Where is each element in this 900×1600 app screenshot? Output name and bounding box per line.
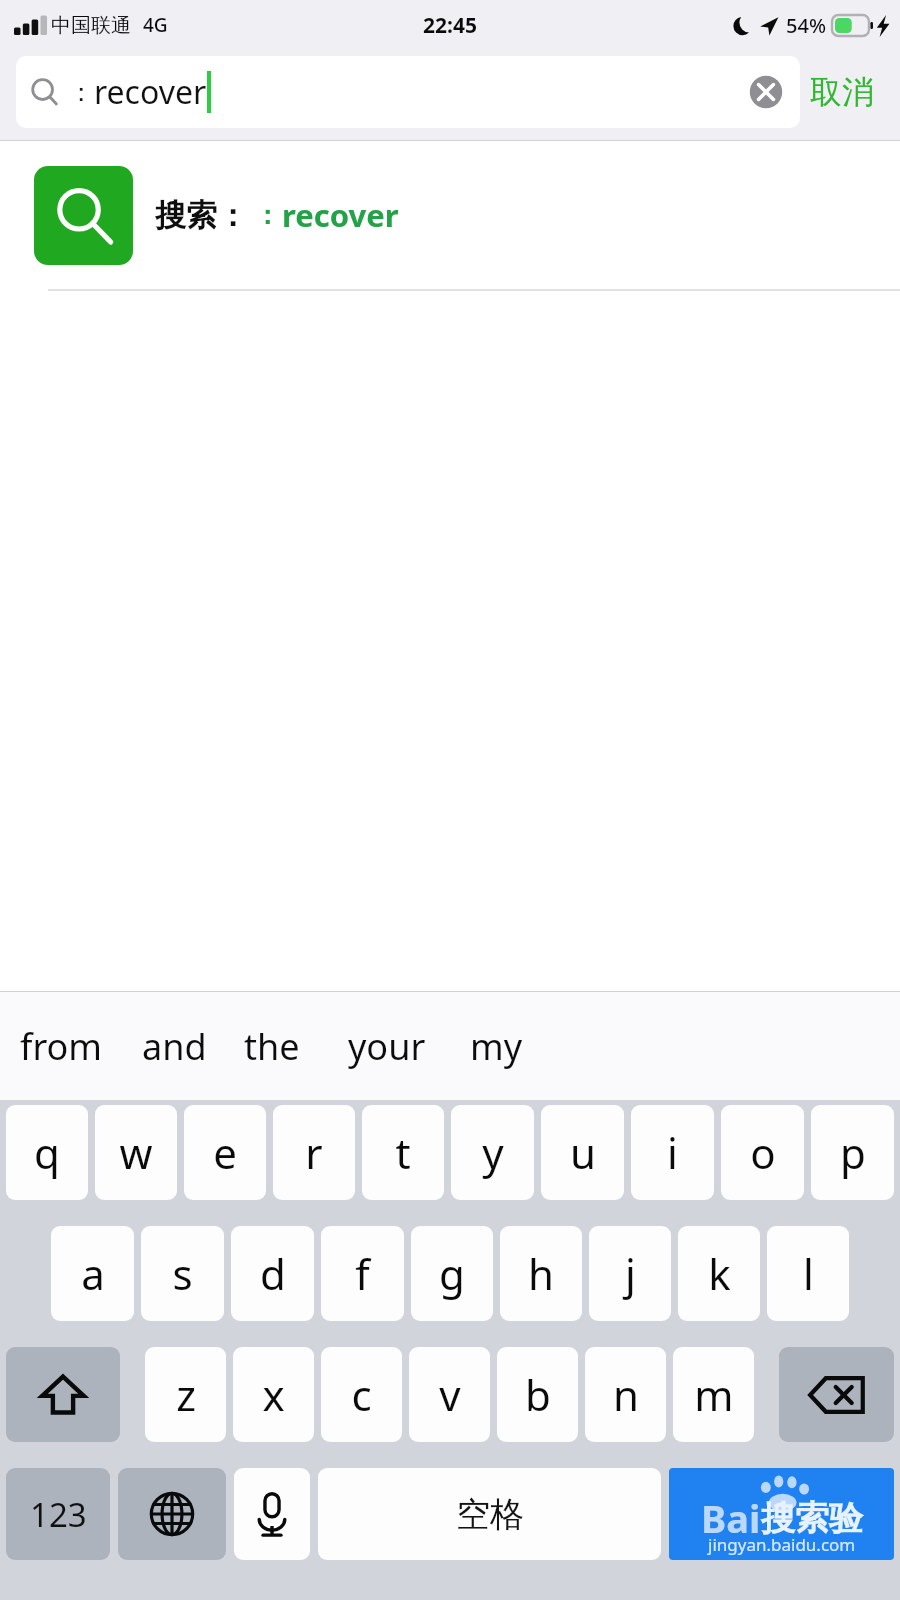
staticText: i: [667, 1124, 678, 1181]
staticText: f: [355, 1245, 370, 1302]
staticText: d: [260, 1245, 286, 1302]
staticText: 4G: [143, 12, 168, 38]
button[interactable]: t: [362, 1105, 444, 1200]
button[interactable]: Switch keyboard language: [118, 1468, 226, 1560]
button[interactable]: Clear text: [746, 72, 786, 112]
staticText: jingyan.baidu.com: [708, 1533, 856, 1556]
button[interactable]: c: [321, 1347, 402, 1442]
button[interactable]: k: [678, 1226, 760, 1321]
button[interactable]: y: [451, 1105, 534, 1200]
button[interactable]: m: [673, 1347, 754, 1442]
button[interactable]: the: [244, 1022, 300, 1071]
staticText: the: [244, 1022, 300, 1071]
staticText: ：: [68, 76, 94, 109]
button[interactable]: f: [321, 1226, 404, 1321]
staticText: w: [119, 1124, 153, 1181]
staticText: c: [351, 1366, 372, 1423]
button[interactable]: b: [497, 1347, 578, 1442]
button[interactable]: q: [6, 1105, 88, 1200]
button[interactable]: u: [541, 1105, 624, 1200]
button[interactable]: Shift: [6, 1347, 120, 1442]
button[interactable]: Voice input: [234, 1468, 310, 1560]
button[interactable]: p: [811, 1105, 894, 1200]
staticText: j: [625, 1245, 636, 1302]
staticText: 中国联通: [51, 13, 131, 38]
staticText: n: [613, 1366, 639, 1423]
button[interactable]: o: [721, 1105, 804, 1200]
staticText: p: [840, 1124, 866, 1181]
staticText: Bai: [701, 1492, 761, 1544]
staticText: and: [142, 1022, 207, 1071]
staticText: v: [439, 1366, 461, 1423]
staticText: recover: [282, 194, 399, 236]
button[interactable]: ：: [16, 56, 800, 128]
staticText: 123: [30, 1492, 87, 1537]
staticText: ：: [254, 199, 280, 232]
staticText: g: [439, 1245, 465, 1302]
staticText: 搜索：: [155, 196, 248, 235]
button[interactable]: l: [767, 1226, 849, 1321]
staticText: r: [305, 1124, 323, 1181]
button[interactable]: your: [348, 1022, 426, 1071]
staticText: x: [262, 1366, 285, 1423]
button[interactable]: from: [20, 1022, 102, 1071]
staticText: b: [525, 1366, 551, 1423]
staticText: 搜索验: [761, 1497, 863, 1540]
staticText: e: [213, 1124, 237, 1181]
staticText: q: [34, 1124, 60, 1181]
button[interactable]: 空格: [318, 1468, 661, 1560]
staticText: from: [20, 1022, 102, 1071]
button[interactable]: h: [500, 1226, 582, 1321]
staticText: your: [348, 1022, 426, 1071]
staticText: y: [482, 1124, 504, 1181]
button[interactable]: 搜索：: [0, 141, 900, 289]
staticText: my: [470, 1022, 523, 1071]
button[interactable]: s: [141, 1226, 224, 1321]
button[interactable]: and: [142, 1022, 207, 1071]
staticText: u: [570, 1124, 596, 1181]
staticText: 54%: [786, 12, 826, 39]
staticText: z: [176, 1366, 196, 1423]
button[interactable]: n: [585, 1347, 666, 1442]
button[interactable]: v: [409, 1347, 490, 1442]
button[interactable]: w: [95, 1105, 177, 1200]
button[interactable]: z: [145, 1347, 226, 1442]
staticText: 空格: [456, 1493, 524, 1536]
button[interactable]: i: [631, 1105, 714, 1200]
button[interactable]: Baidu Jingyan watermark: [669, 1468, 894, 1560]
staticText: m: [694, 1366, 734, 1423]
staticText: t: [395, 1124, 411, 1181]
button[interactable]: j: [589, 1226, 671, 1321]
staticText: recover: [94, 70, 207, 114]
button[interactable]: g: [411, 1226, 493, 1321]
staticText: 22:45: [423, 11, 477, 40]
staticText: 取消: [810, 72, 874, 112]
button[interactable]: Backspace: [779, 1347, 894, 1442]
button[interactable]: my: [470, 1022, 523, 1071]
button[interactable]: d: [231, 1226, 314, 1321]
button[interactable]: r: [273, 1105, 355, 1200]
staticText: h: [528, 1245, 554, 1302]
button[interactable]: 取消: [800, 56, 884, 128]
staticText: a: [81, 1245, 105, 1302]
staticText: l: [803, 1245, 814, 1302]
button[interactable]: e: [184, 1105, 266, 1200]
button[interactable]: 123: [6, 1468, 110, 1560]
staticText: o: [750, 1124, 776, 1181]
staticText: k: [708, 1245, 731, 1302]
button[interactable]: a: [51, 1226, 134, 1321]
button[interactable]: x: [233, 1347, 314, 1442]
staticText: s: [172, 1245, 193, 1302]
